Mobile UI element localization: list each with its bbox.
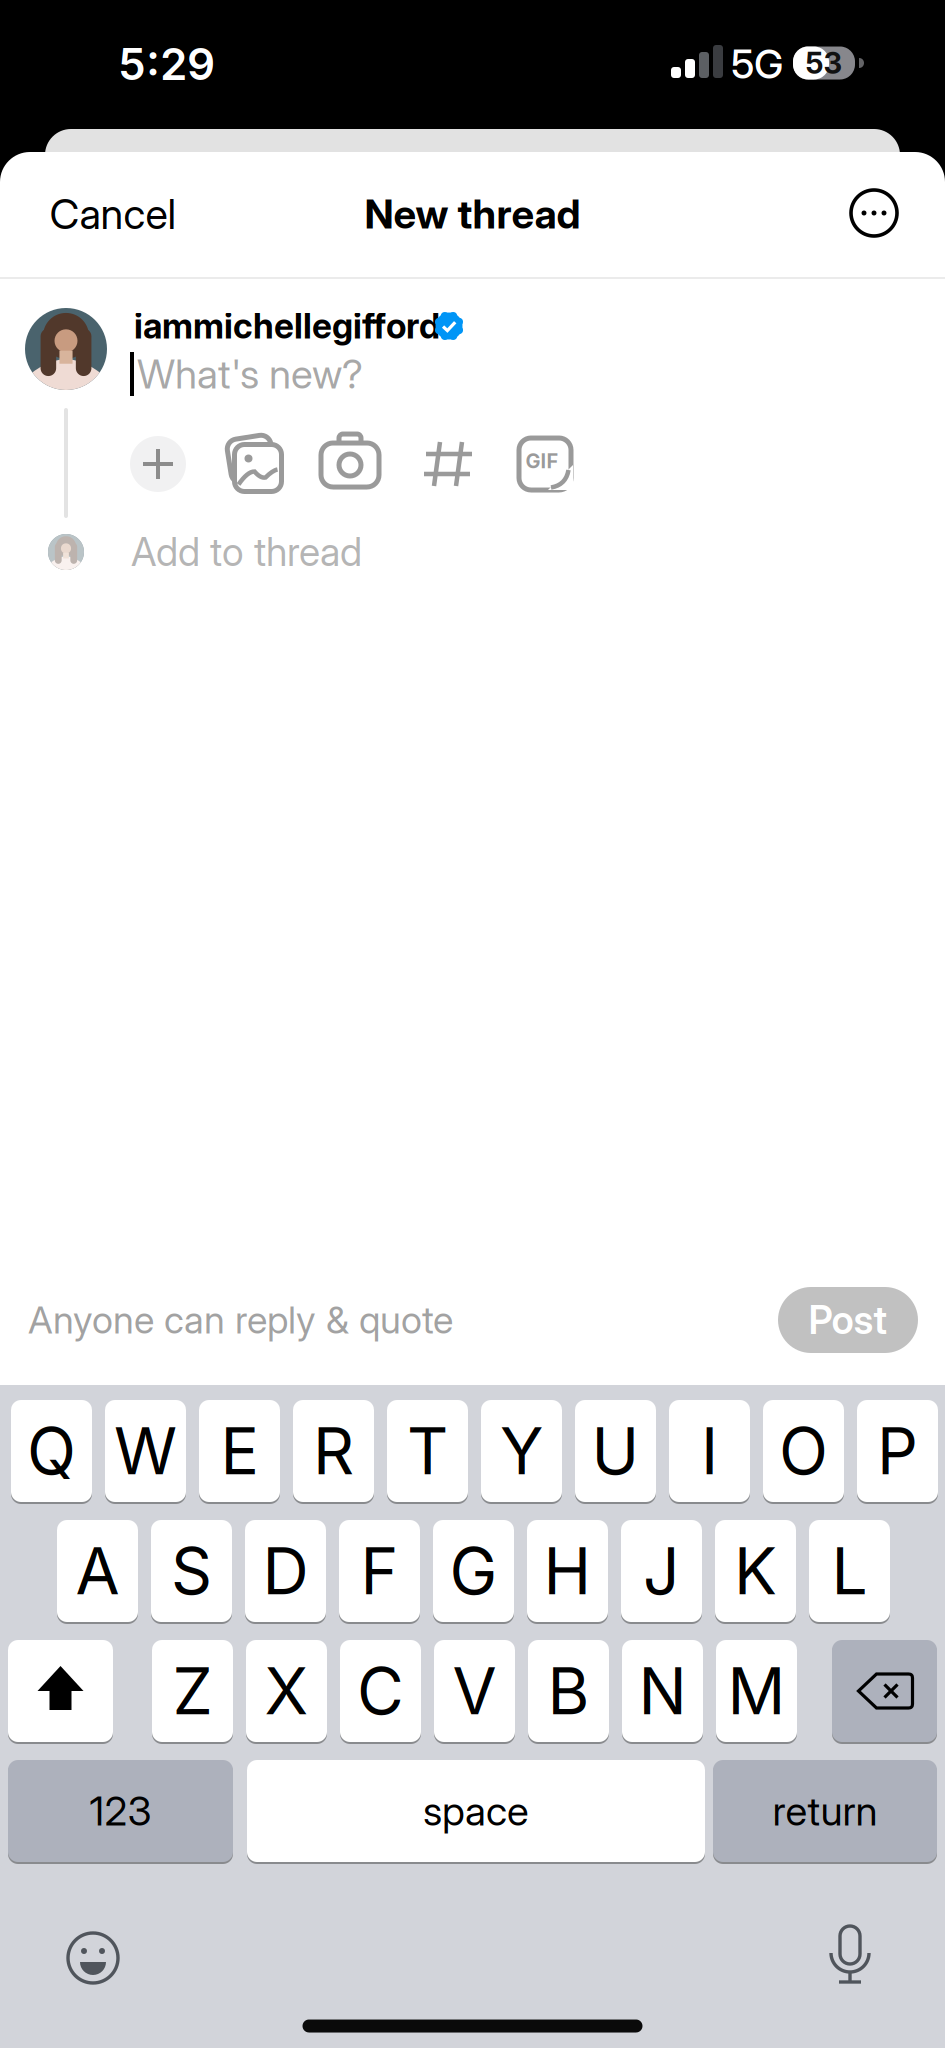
staticText: 53 [805, 46, 842, 80]
button[interactable]: Post [778, 1287, 918, 1353]
button[interactable] [224, 433, 286, 495]
staticText: iammichellegifford [134, 306, 440, 346]
staticText: G [449, 1533, 497, 1609]
button[interactable]: S [151, 1520, 232, 1622]
staticText: E [220, 1413, 258, 1489]
button[interactable]: G [433, 1520, 514, 1622]
button[interactable]: Q [11, 1400, 92, 1502]
staticText: L [831, 1533, 867, 1609]
staticText: Anyone can reply & quote [28, 1298, 453, 1342]
button[interactable]: A [57, 1520, 138, 1622]
staticText: 5:29 [118, 38, 215, 90]
button[interactable]: U [575, 1400, 656, 1502]
button[interactable]: X [246, 1640, 327, 1742]
button[interactable] [319, 431, 381, 493]
button[interactable]: E [199, 1400, 280, 1502]
staticText: 5G [731, 40, 783, 88]
staticText: W [114, 1413, 177, 1489]
staticText: Add to thread [131, 529, 362, 575]
button[interactable]: O [763, 1400, 844, 1502]
staticText: F [360, 1533, 398, 1609]
staticText: T [407, 1413, 448, 1489]
button[interactable]: Add to thread [47, 526, 447, 578]
button[interactable]: space [247, 1760, 705, 1862]
button[interactable]: R [293, 1400, 374, 1502]
button[interactable]: return [713, 1760, 937, 1862]
staticText: V [452, 1653, 496, 1729]
staticText: Z [172, 1653, 212, 1729]
staticText: Cancel [49, 190, 176, 238]
button[interactable]: D [245, 1520, 326, 1622]
button[interactable] [65, 1930, 121, 1986]
button[interactable]: K [715, 1520, 796, 1622]
button[interactable]: Cancel [33, 179, 193, 249]
button[interactable] [130, 436, 186, 492]
staticText: I [701, 1413, 718, 1489]
staticText: B [547, 1653, 589, 1729]
button[interactable]: H [527, 1520, 608, 1622]
button[interactable]: P [857, 1400, 938, 1502]
button[interactable] [849, 188, 899, 238]
button[interactable]: 123 [8, 1760, 233, 1862]
staticText: space [423, 1787, 529, 1835]
staticText: U [591, 1413, 639, 1489]
staticText: R [313, 1413, 354, 1489]
staticText: J [643, 1533, 680, 1609]
staticText: M [727, 1653, 785, 1729]
button[interactable]: T [387, 1400, 468, 1502]
button[interactable]: W [105, 1400, 186, 1502]
button[interactable] [420, 436, 476, 492]
staticText: What's new? [137, 350, 363, 398]
staticText: N [638, 1653, 686, 1729]
button[interactable]: L [809, 1520, 890, 1622]
staticText: A [75, 1533, 119, 1609]
button[interactable]: Z [152, 1640, 233, 1742]
button[interactable]: C [340, 1640, 421, 1742]
button[interactable]: GIF [515, 434, 575, 494]
button[interactable]: J [621, 1520, 702, 1622]
button[interactable]: F [339, 1520, 420, 1622]
staticText: 123 [89, 1787, 151, 1835]
staticText: X [264, 1653, 308, 1729]
staticText: Q [27, 1413, 76, 1489]
button[interactable]: B [528, 1640, 609, 1742]
staticText: Post [808, 1297, 887, 1343]
staticText: O [779, 1413, 828, 1489]
staticText: return [772, 1787, 877, 1835]
button[interactable]: V [434, 1640, 515, 1742]
button[interactable]: N [622, 1640, 703, 1742]
staticText: C [357, 1653, 404, 1729]
button[interactable] [8, 1640, 113, 1742]
staticText: H [543, 1533, 591, 1609]
button[interactable] [832, 1640, 937, 1742]
button[interactable] [826, 1924, 874, 1986]
button[interactable]: I [669, 1400, 750, 1502]
staticText: Y [500, 1413, 543, 1489]
staticText: K [734, 1533, 777, 1609]
staticText: P [877, 1413, 918, 1489]
staticText: GIF [525, 449, 558, 473]
staticText: New thread [364, 190, 580, 238]
button[interactable]: Y [481, 1400, 562, 1502]
staticText: D [262, 1533, 308, 1609]
button[interactable]: M [716, 1640, 797, 1742]
staticText: S [171, 1533, 212, 1609]
